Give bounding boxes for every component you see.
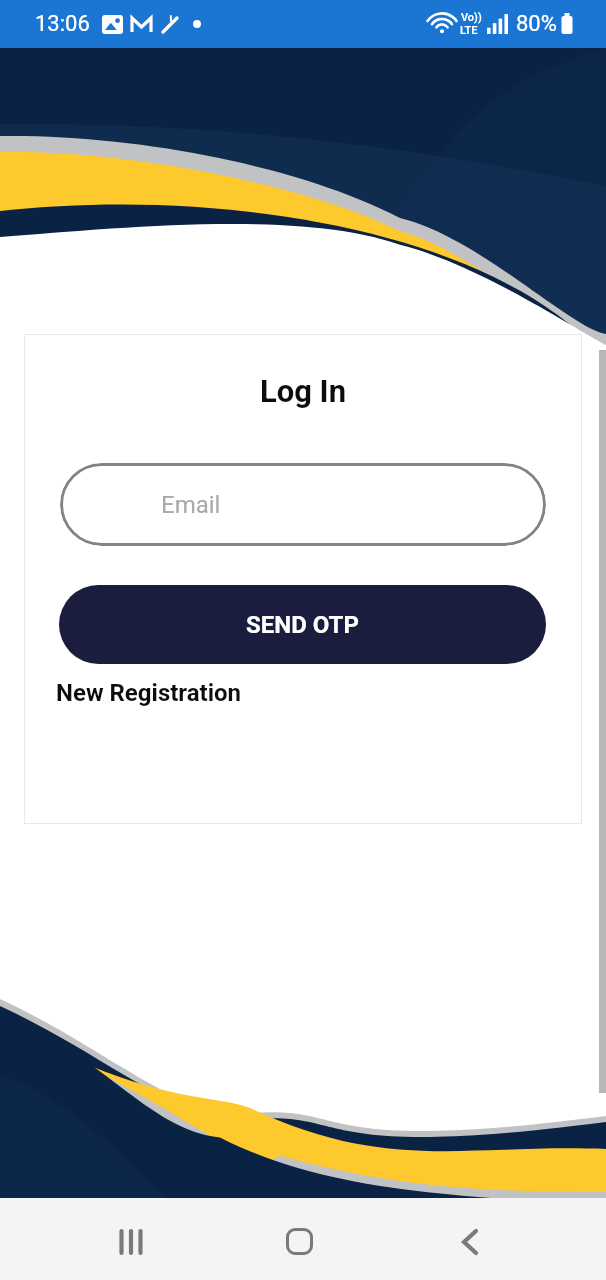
button[interactable]: SEND OTP: [59, 585, 546, 664]
staticText: New Registration: [56, 679, 242, 707]
staticText: 80%: [516, 11, 557, 37]
staticText: Log In: [24, 373, 582, 409]
staticText: Vo)): [461, 11, 482, 24]
button[interactable]: New Registration: [56, 679, 242, 707]
staticText: SEND OTP: [246, 611, 359, 639]
button[interactable]: Email: [60, 463, 546, 546]
button[interactable]: Home: [267, 1209, 332, 1274]
button[interactable]: Recent apps: [98, 1209, 163, 1274]
staticText: 13:06: [35, 11, 90, 37]
button[interactable]: Back: [437, 1209, 502, 1274]
staticText: LTE1: [460, 24, 482, 37]
staticText: Email: [161, 491, 221, 519]
